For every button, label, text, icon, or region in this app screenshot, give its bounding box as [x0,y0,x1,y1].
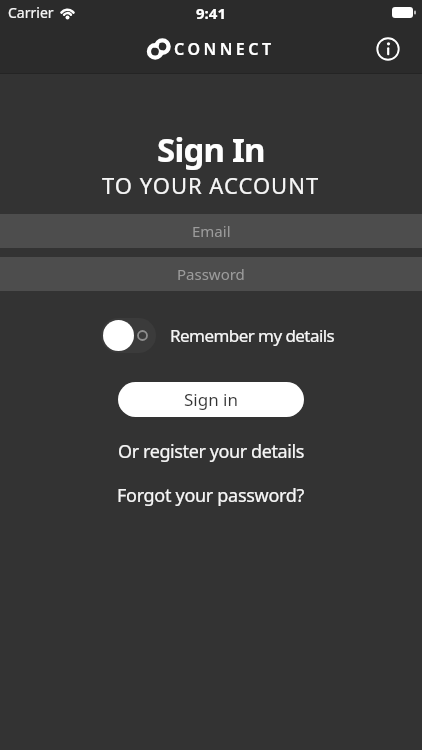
staticText: 9:41 [196,3,226,23]
staticText: Email [192,221,231,241]
button[interactable]: Sign in [118,382,304,417]
staticText: Sign in [184,388,238,411]
button[interactable]: Forgot your password? [117,483,305,508]
staticText: Carrier [8,3,54,22]
staticText: TO YOUR ACCOUNT [102,170,320,200]
button[interactable] [101,318,156,353]
button[interactable]: Or register your details [118,439,304,464]
button[interactable]: Email [0,214,422,248]
staticText: Remember my details [170,324,335,347]
button[interactable] [371,32,405,66]
staticText: Password [177,264,245,284]
staticText: CONNECT [174,38,275,60]
button[interactable]: Password [0,257,422,291]
staticText: Sign In [157,127,265,172]
